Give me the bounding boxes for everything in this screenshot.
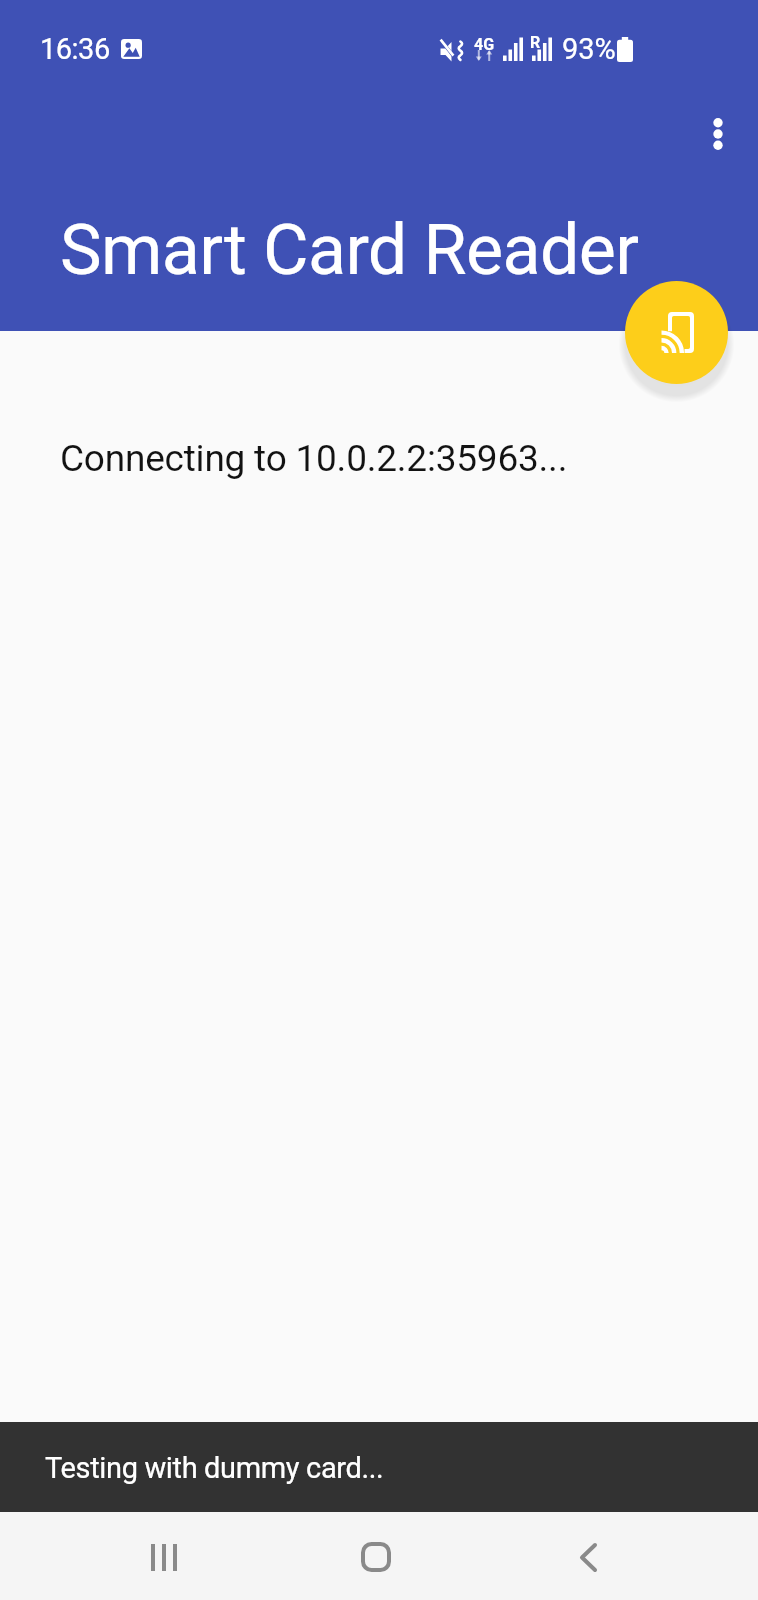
button[interactable]: Testing with dummy card... bbox=[0, 1422, 758, 1512]
button[interactable]: Recent apps bbox=[120, 1513, 208, 1600]
staticText: Smart Card Reader bbox=[60, 209, 639, 291]
staticText: 93% bbox=[562, 32, 616, 66]
button[interactable]: Tap and play bbox=[625, 281, 728, 384]
button[interactable]: More options bbox=[673, 89, 758, 178]
staticText: 16:36 bbox=[40, 32, 110, 66]
staticText: Connecting to 10.0.2.2:35963... bbox=[60, 437, 568, 480]
button[interactable]: Home bbox=[332, 1513, 420, 1600]
button[interactable]: Back bbox=[544, 1513, 632, 1600]
staticText: R bbox=[530, 33, 541, 52]
staticText: 4G bbox=[474, 35, 495, 54]
staticText: Testing with dummy card... bbox=[45, 1451, 384, 1485]
